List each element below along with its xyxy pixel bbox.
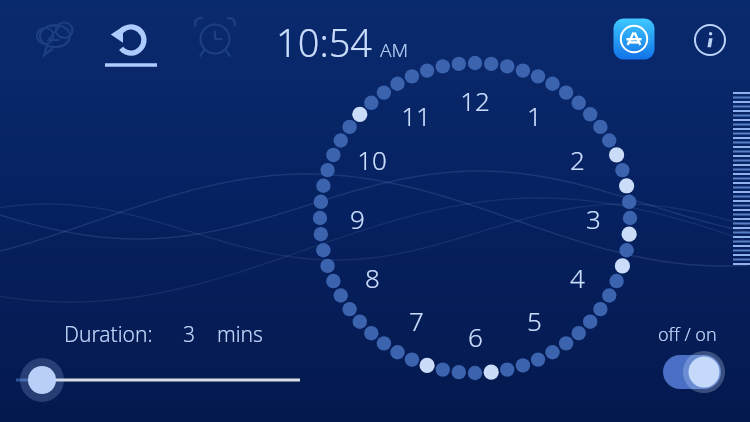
button[interactable]: Info [687, 16, 733, 62]
staticText: 3 [586, 201, 601, 235]
staticText: 6 [468, 319, 483, 353]
staticText: 10 [357, 142, 387, 176]
staticText: 3 [183, 320, 195, 349]
staticText: 5 [527, 303, 542, 337]
staticText: 8 [365, 260, 380, 294]
button[interactable]: Toggle on off [663, 355, 721, 389]
staticText: 2 [570, 142, 585, 176]
button[interactable]: Reset timer [106, 12, 158, 70]
staticText: 7 [409, 303, 424, 337]
staticText: 11 [401, 98, 431, 132]
staticText: 4 [570, 260, 585, 294]
staticText: AM [380, 37, 409, 63]
staticText: mins [217, 320, 263, 349]
staticText: 9 [350, 201, 365, 235]
button[interactable]: Alarm [190, 12, 242, 64]
button[interactable]: Sleep mode [30, 12, 82, 64]
staticText: off / on [658, 322, 717, 347]
staticText: 10:54 [276, 16, 373, 68]
staticText: 12 [460, 83, 490, 117]
staticText: 1 [527, 98, 542, 132]
button[interactable]: Duration slider [10, 356, 310, 404]
button[interactable]: App Store [610, 15, 658, 63]
staticText: Duration: [64, 320, 153, 349]
